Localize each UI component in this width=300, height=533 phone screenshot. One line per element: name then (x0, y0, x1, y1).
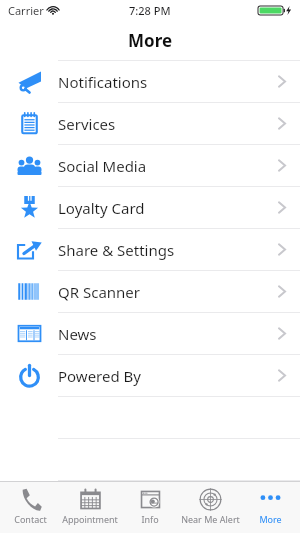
staticText: Info (141, 513, 159, 525)
button[interactable]: Social Media (0, 145, 300, 186)
button[interactable]: Services (0, 103, 300, 144)
button[interactable]: Appointment (60, 482, 120, 533)
staticText: Powered By (58, 366, 278, 386)
staticText: Share & Settings (58, 240, 278, 260)
button[interactable]: Loyalty Card (0, 187, 300, 228)
staticText: Social Media (58, 156, 278, 176)
staticText: Contact (14, 513, 47, 525)
button[interactable]: More (240, 482, 300, 533)
button[interactable]: Info (120, 482, 180, 533)
staticText: Near Me Alert (181, 513, 240, 525)
staticText: Notifications (58, 72, 278, 92)
button[interactable]: Near Me Alert (180, 482, 240, 533)
staticText: Loyalty Card (58, 198, 278, 218)
staticText: Carrier (8, 3, 44, 18)
button[interactable]: Contact (0, 482, 60, 533)
staticText: More (128, 29, 173, 52)
staticText: Services (58, 114, 278, 134)
staticText: 7:28 PM (129, 3, 171, 18)
staticText: QR Scanner (58, 282, 278, 302)
button[interactable]: Share & Settings (0, 229, 300, 270)
button[interactable]: Powered By (0, 355, 300, 396)
button[interactable]: QR Scanner (0, 271, 300, 312)
button[interactable]: Notifications (0, 61, 300, 102)
staticText: More (259, 513, 282, 525)
button[interactable]: News (0, 313, 300, 354)
staticText: Appointment (62, 513, 118, 525)
staticText: News (58, 324, 278, 344)
